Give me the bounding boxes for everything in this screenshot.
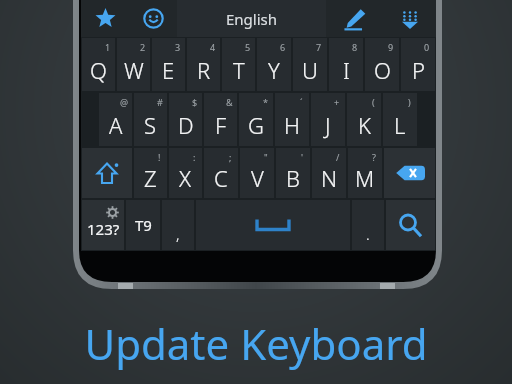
button[interactable]: 123?: [82, 200, 124, 250]
staticText: &: [226, 96, 233, 108]
button[interactable]: V: [240, 148, 274, 198]
button[interactable]: E: [152, 38, 185, 91]
button[interactable]: English: [177, 0, 326, 37]
staticText: Update Keyboard: [84, 315, 428, 372]
staticText: ?: [372, 151, 376, 163]
staticText: 0: [424, 41, 430, 53]
staticText: 5: [245, 41, 251, 53]
button[interactable]: Q: [82, 38, 115, 91]
staticText: X: [179, 163, 192, 193]
staticText: M: [355, 163, 375, 193]
staticText: @: [120, 96, 129, 108]
staticText: 6: [280, 41, 286, 53]
staticText: .: [366, 224, 370, 244]
button[interactable]: K: [347, 93, 381, 146]
staticText: K: [358, 110, 371, 140]
staticText: H: [284, 110, 300, 140]
button[interactable]: T9: [126, 200, 160, 250]
button[interactable]: G: [239, 93, 273, 146]
staticText: Q: [90, 55, 107, 85]
staticText: A: [109, 110, 123, 140]
staticText: B: [286, 163, 300, 193]
button[interactable]: Z: [134, 148, 167, 198]
staticText: V: [251, 163, 264, 193]
button[interactable]: U: [293, 38, 327, 91]
staticText: I: [343, 55, 350, 85]
button[interactable]: L: [383, 93, 417, 146]
button[interactable]: Backspace: [384, 148, 435, 198]
staticText: 2: [140, 41, 146, 53]
staticText: :: [193, 151, 196, 163]
button[interactable]: ,: [162, 200, 194, 250]
button[interactable]: Y: [257, 38, 291, 91]
staticText: ": [264, 151, 268, 163]
button[interactable]: T: [222, 38, 255, 91]
staticText: $: [192, 96, 198, 108]
staticText: W: [124, 55, 144, 85]
staticText: L: [394, 110, 406, 140]
staticText: F: [215, 110, 227, 140]
button[interactable]: R: [187, 38, 220, 91]
button[interactable]: J: [311, 93, 345, 146]
button[interactable]: N: [312, 148, 346, 198]
staticText: R: [197, 55, 211, 85]
staticText: !: [158, 151, 161, 163]
button[interactable]: F: [204, 93, 237, 146]
staticText: 4: [210, 41, 216, 53]
button[interactable]: C: [204, 148, 238, 198]
button[interactable]: X: [169, 148, 202, 198]
button[interactable]: D: [169, 93, 202, 146]
staticText: ´: [300, 96, 303, 108]
button[interactable]: Emoji: [129, 0, 177, 37]
staticText: T: [233, 55, 245, 85]
button[interactable]: Favourites: [81, 0, 129, 37]
staticText: ): [408, 96, 411, 108]
staticText: D: [178, 110, 194, 140]
staticText: P: [412, 55, 425, 85]
staticText: C: [214, 163, 228, 193]
button[interactable]: W: [117, 38, 150, 91]
button[interactable]: I: [329, 38, 363, 91]
staticText: +: [334, 96, 340, 108]
staticText: G: [248, 110, 264, 140]
staticText: ,: [176, 224, 180, 244]
staticText: ;: [229, 151, 232, 163]
button[interactable]: B: [276, 148, 310, 198]
staticText: J: [325, 110, 331, 140]
button[interactable]: Space: [196, 200, 350, 250]
staticText: #: [157, 96, 163, 108]
button[interactable]: A: [99, 93, 132, 146]
staticText: 123?: [87, 219, 120, 239]
staticText: O: [374, 55, 391, 85]
staticText: U: [302, 55, 318, 85]
staticText: 9: [388, 41, 394, 53]
staticText: /: [336, 151, 340, 163]
staticText: T9: [135, 215, 152, 235]
staticText: 7: [316, 41, 322, 53]
button[interactable]: .: [352, 200, 384, 250]
button[interactable]: M: [348, 148, 382, 198]
button[interactable]: Hide keyboard: [383, 0, 436, 37]
staticText: Z: [144, 163, 157, 193]
staticText: ': [301, 151, 304, 163]
staticText: N: [321, 163, 338, 193]
staticText: 1: [105, 41, 111, 53]
staticText: 3: [175, 41, 181, 53]
staticText: E: [162, 55, 175, 85]
button[interactable]: Shift: [82, 148, 132, 198]
button[interactable]: P: [401, 38, 435, 91]
staticText: (: [372, 96, 375, 108]
button[interactable]: Handwriting: [326, 0, 383, 37]
staticText: *: [263, 96, 268, 108]
button[interactable]: H: [275, 93, 309, 146]
staticText: S: [144, 110, 157, 140]
button[interactable]: O: [365, 38, 399, 91]
staticText: 8: [352, 41, 358, 53]
button[interactable]: S: [134, 93, 167, 146]
button[interactable]: Search: [386, 200, 435, 250]
staticText: English: [226, 9, 278, 29]
staticText: Y: [268, 55, 280, 85]
